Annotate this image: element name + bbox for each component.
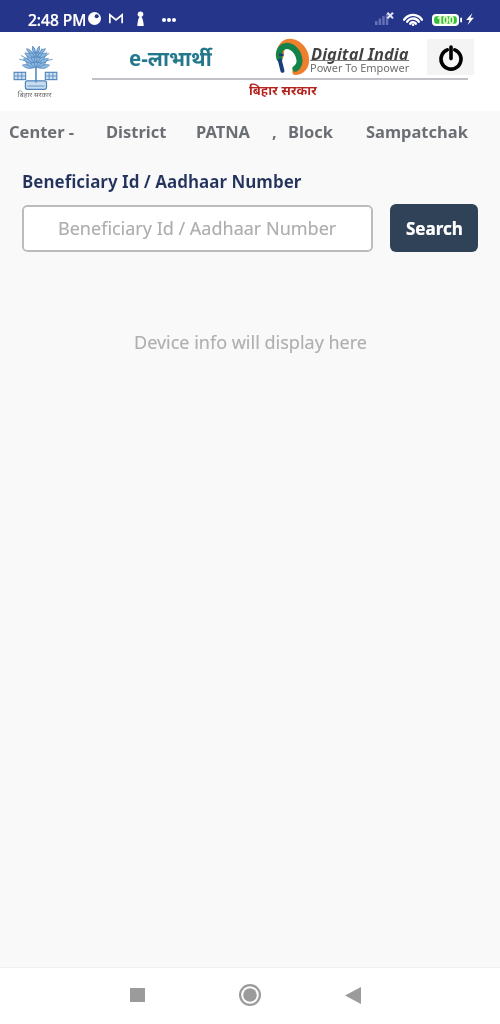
staticText: बिहार सरकार xyxy=(249,81,317,99)
staticText: बिहार सरकार xyxy=(18,90,52,100)
staticText: Digital India xyxy=(311,42,409,64)
staticText: District xyxy=(106,120,167,142)
button[interactable]: Center - xyxy=(9,120,75,142)
staticText: Sampatchak xyxy=(366,120,468,142)
button[interactable]: Block xyxy=(288,120,333,142)
button[interactable]: District xyxy=(106,120,167,142)
staticText: 100 xyxy=(437,13,455,27)
staticText: Block xyxy=(288,120,333,142)
button[interactable]: Logout xyxy=(427,39,474,75)
button[interactable]: Back xyxy=(325,967,381,1023)
staticText: Center - xyxy=(9,120,75,142)
button[interactable]: Sampatchak xyxy=(366,120,468,142)
staticText: e-लाभार्थी xyxy=(129,44,212,72)
button[interactable]: Recent apps xyxy=(109,967,165,1023)
staticText: Beneficiary Id / Aadhaar Number xyxy=(58,216,337,241)
staticText: Power To Empower xyxy=(310,60,410,75)
staticText: Search xyxy=(406,217,463,240)
staticText: Beneficiary Id / Aadhaar Number xyxy=(22,170,302,193)
button[interactable]: Search xyxy=(390,204,478,252)
button[interactable]: PATNA xyxy=(196,120,251,142)
button[interactable]: Beneficiary Id / Aadhaar Number xyxy=(22,205,373,252)
button[interactable]: Home xyxy=(222,967,278,1023)
staticText: PATNA xyxy=(196,120,251,142)
staticText: 2:48 PM xyxy=(28,9,87,30)
staticText: , xyxy=(272,120,277,142)
staticText: Device info will display here xyxy=(134,330,367,355)
